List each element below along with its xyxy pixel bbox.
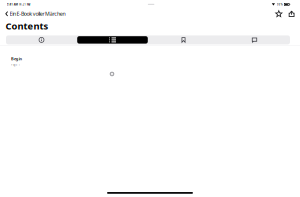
staticText: Ein E-Book voller Märchen <box>9 10 65 17</box>
staticText: 98% <box>277 3 282 6</box>
button[interactable]: Book information <box>6 35 77 44</box>
staticText: Contents <box>5 20 48 32</box>
button[interactable]: Share <box>286 9 297 19</box>
staticText: 9:41 AM <box>7 3 18 6</box>
button[interactable]: Favorite <box>271 8 286 19</box>
button[interactable]: Notes <box>219 35 290 44</box>
staticText: Page 1 <box>11 63 20 66</box>
button[interactable]: Begin <box>0 46 300 69</box>
button[interactable]: Bookmarks <box>148 35 219 44</box>
button[interactable]: Ein E-Book voller Märchen <box>4 8 66 19</box>
staticText: Begin <box>11 56 23 61</box>
staticText: Fri 21 Mar <box>19 3 30 6</box>
button[interactable]: Contents <box>77 35 148 44</box>
